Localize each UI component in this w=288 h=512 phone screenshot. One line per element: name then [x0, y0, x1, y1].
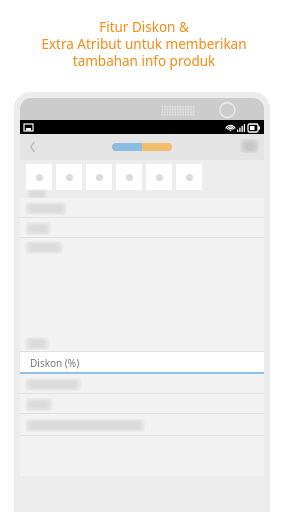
button[interactable] [20, 394, 264, 414]
button[interactable] [20, 218, 264, 238]
button[interactable]: Add photo [116, 164, 142, 190]
button[interactable] [142, 143, 172, 151]
button[interactable]: Add photo [146, 164, 172, 190]
button[interactable]: Add photo [86, 164, 112, 190]
button[interactable] [112, 143, 142, 151]
button[interactable]: Add photo [176, 164, 202, 190]
button[interactable] [20, 414, 264, 436]
button[interactable]: Menu [245, 142, 256, 153]
button[interactable]: Back [28, 142, 38, 152]
staticText: Fitur Diskon & Extra Atribut untuk membe… [41, 18, 247, 70]
button[interactable]: Add photo [56, 164, 82, 190]
button[interactable] [20, 198, 264, 218]
button[interactable]: Diskon (%) [20, 352, 264, 374]
other: Notification [24, 123, 33, 132]
button[interactable]: Add photo [26, 164, 52, 190]
button[interactable] [20, 374, 264, 394]
button[interactable] [20, 334, 264, 352]
staticText: Diskon (%) [30, 356, 80, 370]
